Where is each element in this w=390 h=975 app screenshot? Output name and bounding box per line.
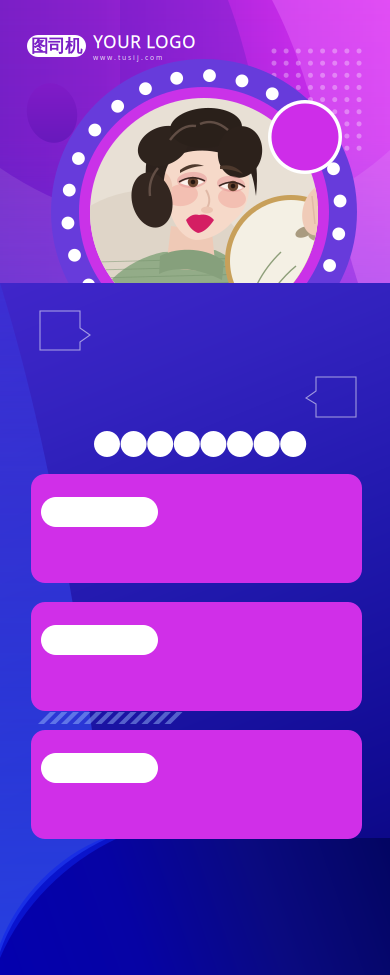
staticText: w w w . t u s i j . c o m	[93, 53, 162, 62]
button[interactable]: 图司机	[27, 34, 227, 58]
button[interactable]: Content card	[31, 602, 362, 711]
staticText: YOUR LOGO	[93, 30, 196, 53]
button[interactable]: Content card	[31, 730, 362, 839]
button[interactable]: Content card	[31, 474, 362, 583]
staticText: 图司机	[31, 35, 82, 57]
